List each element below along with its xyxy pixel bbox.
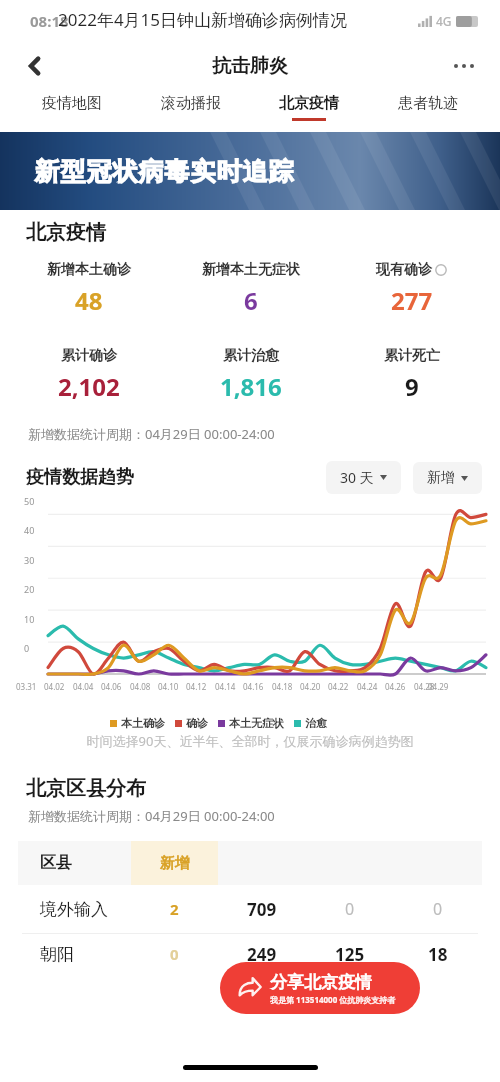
staticText: 18 — [428, 943, 448, 966]
staticText: 累计治愈 — [223, 347, 279, 365]
staticText: 277 — [391, 284, 433, 317]
staticText: 0 — [24, 642, 30, 654]
staticText: 40 — [24, 524, 35, 536]
staticText: 疫情地图 — [42, 94, 102, 113]
button[interactable]: 北京疫情 — [277, 90, 341, 125]
staticText: 新增 — [427, 469, 455, 487]
staticText: 新增本土确诊 — [47, 261, 131, 279]
button[interactable]: 境外输入 — [18, 885, 482, 933]
staticText: 本土确诊 — [121, 716, 165, 730]
button[interactable]: 本土无症状 — [218, 716, 284, 730]
staticText: 累计死亡 — [384, 347, 440, 365]
staticText: 2 — [170, 899, 179, 919]
staticText: 本土无症状 — [229, 716, 284, 730]
button[interactable]: 新增 — [413, 462, 482, 494]
button[interactable]: 患者轨迹 — [396, 90, 460, 125]
staticText: 04.24 — [357, 681, 378, 692]
staticText: 朝阳 — [40, 944, 74, 965]
staticText: 04.06 — [101, 681, 122, 692]
staticText: 新增数据统计周期：04月29日 00:00-24:00 — [28, 425, 275, 443]
staticText: 04.04 — [73, 681, 94, 692]
staticText: 我是第 113514000 位抗肺炎支持者 — [270, 994, 396, 1005]
button[interactable]: 滚动播报 — [159, 90, 223, 125]
staticText: 04.12 — [186, 681, 207, 692]
staticText: 现有确诊 — [376, 261, 432, 279]
staticText: 时间选择90天、近半年、全部时，仅展示确诊病例趋势图 — [18, 732, 482, 750]
button[interactable]: 朝阳 — [18, 934, 482, 974]
button[interactable]: 治愈 — [294, 716, 327, 730]
staticText: 新增数据统计周期：04月29日 00:00-24:00 — [28, 807, 275, 825]
staticText: 08:18 — [30, 11, 69, 31]
staticText: 累计确诊 — [61, 347, 117, 365]
staticText: 04.08 — [130, 681, 151, 692]
staticText: 1,816 — [220, 370, 282, 403]
button[interactable]: 30 天 — [326, 461, 401, 494]
staticText: 患者轨迹 — [398, 94, 458, 113]
staticText: 北京疫情 — [26, 220, 106, 245]
staticText: 04.20 — [300, 681, 321, 692]
staticText: 确诊 — [186, 716, 208, 730]
staticText: 0 — [170, 944, 179, 964]
staticText: 分享北京疫情 — [270, 972, 372, 993]
staticText: 抗击肺炎 — [212, 54, 288, 78]
button[interactable]: More options — [442, 44, 486, 88]
staticText: 30 天 — [340, 468, 374, 487]
staticText: 境外输入 — [40, 899, 108, 920]
staticText: 区县 — [40, 853, 72, 873]
staticText: 新增本土无症状 — [202, 261, 300, 279]
staticText: 04.22 — [328, 681, 349, 692]
staticText: 04.10 — [158, 681, 179, 692]
staticText: 治愈 — [305, 716, 327, 730]
staticText: 滚动播报 — [161, 94, 221, 113]
staticText: 125 — [335, 943, 365, 966]
button[interactable]: 本土确诊 — [110, 716, 165, 730]
staticText: 20 — [24, 583, 35, 595]
button[interactable]: 分享北京疫情 — [220, 962, 420, 1014]
staticText: 249 — [247, 943, 277, 966]
staticText: 0 — [433, 898, 443, 920]
staticText: 9 — [405, 370, 419, 403]
staticText: 疫情数据趋势 — [26, 466, 134, 489]
staticText: 6 — [244, 284, 258, 317]
staticText: 04.16 — [243, 681, 264, 692]
staticText: 2022年4月15日钟山新增确诊病例情况 — [58, 8, 500, 31]
staticText: 03.31 — [16, 681, 37, 692]
staticText: 北京疫情 — [279, 94, 339, 113]
staticText: 新型冠状病毒实时追踪 — [34, 156, 294, 187]
staticText: 04.18 — [272, 681, 293, 692]
button[interactable]: Back — [14, 45, 56, 87]
staticText: 2,102 — [58, 370, 120, 403]
staticText: 0 — [345, 898, 355, 920]
staticText: 30 — [24, 554, 35, 566]
staticText: 04.14 — [215, 681, 236, 692]
button[interactable]: 确诊 — [175, 716, 208, 730]
staticText: 709 — [247, 898, 277, 921]
staticText: 50 — [24, 495, 35, 507]
staticText: 新增 — [160, 854, 190, 873]
staticText: 4G — [436, 13, 452, 29]
staticText: 04.28 — [414, 681, 435, 692]
staticText: 北京区县分布 — [26, 776, 146, 801]
staticText: 04.26 — [385, 681, 406, 692]
staticText: 04.02 — [44, 681, 65, 692]
staticText: 48 — [75, 284, 103, 317]
staticText: 10 — [24, 613, 35, 625]
staticText: 04.29 — [428, 681, 449, 692]
button[interactable]: 疫情地图 — [40, 90, 104, 125]
